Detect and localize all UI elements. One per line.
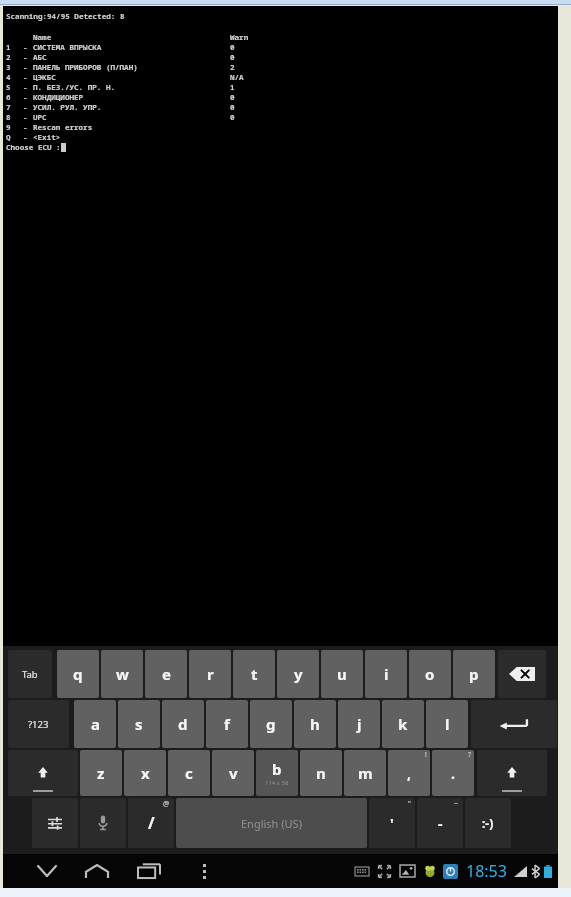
button[interactable]: p <box>453 650 495 698</box>
staticText: Name <box>33 32 52 42</box>
staticText: - <box>438 814 443 833</box>
staticText: 3 <box>6 62 11 72</box>
button[interactable]: - <box>417 798 463 848</box>
button[interactable]: j <box>338 700 380 748</box>
staticText: ?123 <box>28 718 49 731</box>
button[interactable]: k <box>382 700 424 748</box>
button[interactable]: f <box>206 700 248 748</box>
staticText: c <box>185 763 193 783</box>
button[interactable]: s <box>118 700 160 748</box>
button[interactable]: Enter <box>471 700 557 748</box>
button[interactable]: e <box>145 650 187 698</box>
staticText: ' <box>390 814 394 833</box>
staticText: 2 <box>6 52 11 62</box>
button[interactable]: n <box>300 750 342 796</box>
button[interactable]: Space <box>176 798 367 848</box>
staticText: - <box>23 132 28 142</box>
staticText: 1 <box>6 42 11 52</box>
staticText: j <box>357 714 362 734</box>
button[interactable]: Backspace <box>498 650 546 698</box>
staticText: 5 <box>6 82 11 92</box>
staticText: N/A <box>230 72 244 82</box>
staticText: r <box>207 664 214 684</box>
staticText: , <box>407 764 411 783</box>
button[interactable]: q <box>57 650 99 698</box>
button[interactable]: v <box>212 750 254 796</box>
staticText: Tab <box>22 668 38 681</box>
button[interactable]: Voice input <box>80 798 126 848</box>
staticText: . <box>451 764 455 783</box>
staticText: s <box>135 714 143 734</box>
button[interactable]: b <box>256 750 298 796</box>
staticText: 0 <box>230 102 235 112</box>
button[interactable]: a <box>74 700 116 748</box>
staticText: a <box>91 714 100 734</box>
button[interactable]: w <box>101 650 143 698</box>
staticText: 2 <box>230 62 235 72</box>
button[interactable]: . <box>432 750 474 796</box>
staticText: 0 <box>230 92 235 102</box>
staticText: - <box>23 72 28 82</box>
staticText: 0 <box>230 42 235 52</box>
staticText: Choose ECU : <box>6 142 61 152</box>
button[interactable]: Tab <box>8 650 52 698</box>
staticText: i <box>384 664 389 684</box>
button[interactable]: g <box>250 700 292 748</box>
staticText: n <box>316 763 326 783</box>
staticText: 7 <box>6 102 11 112</box>
staticText: ЦЭКБС <box>33 72 56 82</box>
staticText: П. БЕЗ./УС. ПР. Н. <box>33 82 116 92</box>
staticText: m <box>358 763 373 783</box>
staticText: d <box>178 714 188 734</box>
button[interactable]: t <box>233 650 275 698</box>
staticText: <Exit> <box>33 132 61 142</box>
button[interactable]: x <box>124 750 166 796</box>
button[interactable]: r <box>189 650 231 698</box>
staticText: - <box>23 122 28 132</box>
button[interactable]: Recent apps <box>125 854 173 888</box>
staticText: l <box>445 714 450 734</box>
button[interactable]: m <box>344 750 386 796</box>
staticText: English (US) <box>241 816 302 831</box>
button[interactable]: i <box>365 650 407 698</box>
button[interactable]: l <box>426 700 468 748</box>
button[interactable]: o <box>409 650 451 698</box>
button[interactable]: , <box>388 750 430 796</box>
staticText: 4 <box>6 72 11 82</box>
staticText: АБС <box>33 52 47 62</box>
staticText: Q <box>6 132 11 142</box>
button[interactable]: ?123 <box>8 700 69 748</box>
button[interactable]: u <box>321 650 363 698</box>
button[interactable]: Home <box>73 854 121 888</box>
button[interactable]: c <box>168 750 210 796</box>
button[interactable]: Shift <box>477 750 547 796</box>
staticText: Rescan errors <box>33 122 93 132</box>
staticText: - <box>23 62 28 72</box>
staticText: e <box>162 664 171 684</box>
staticText: - <box>23 52 28 62</box>
staticText: - <box>23 112 28 122</box>
staticText: o <box>425 664 435 684</box>
staticText: СИСТЕМА ВПРЫСКА <box>33 42 102 52</box>
staticText: @ <box>163 799 170 809</box>
button[interactable]: d <box>162 700 204 748</box>
staticText: g <box>266 714 276 734</box>
button[interactable]: ' <box>369 798 415 848</box>
staticText: t <box>251 664 258 684</box>
button[interactable]: Shift <box>8 750 78 796</box>
staticText: y <box>294 664 303 684</box>
staticText: k <box>398 714 408 734</box>
staticText: ? <box>468 750 471 759</box>
staticText: q <box>73 664 83 684</box>
button[interactable]: h <box>294 700 336 748</box>
button[interactable]: Emoticons <box>465 798 511 848</box>
staticText: 114 x 58 <box>265 779 289 787</box>
staticText: - <box>23 82 28 92</box>
button[interactable]: Menu <box>183 854 225 888</box>
button[interactable]: z <box>80 750 122 796</box>
button[interactable]: y <box>277 650 319 698</box>
button[interactable]: Back <box>23 854 71 888</box>
staticText: x <box>141 763 150 783</box>
button[interactable]: Keyboard settings <box>32 798 78 848</box>
button[interactable]: / <box>128 798 174 848</box>
